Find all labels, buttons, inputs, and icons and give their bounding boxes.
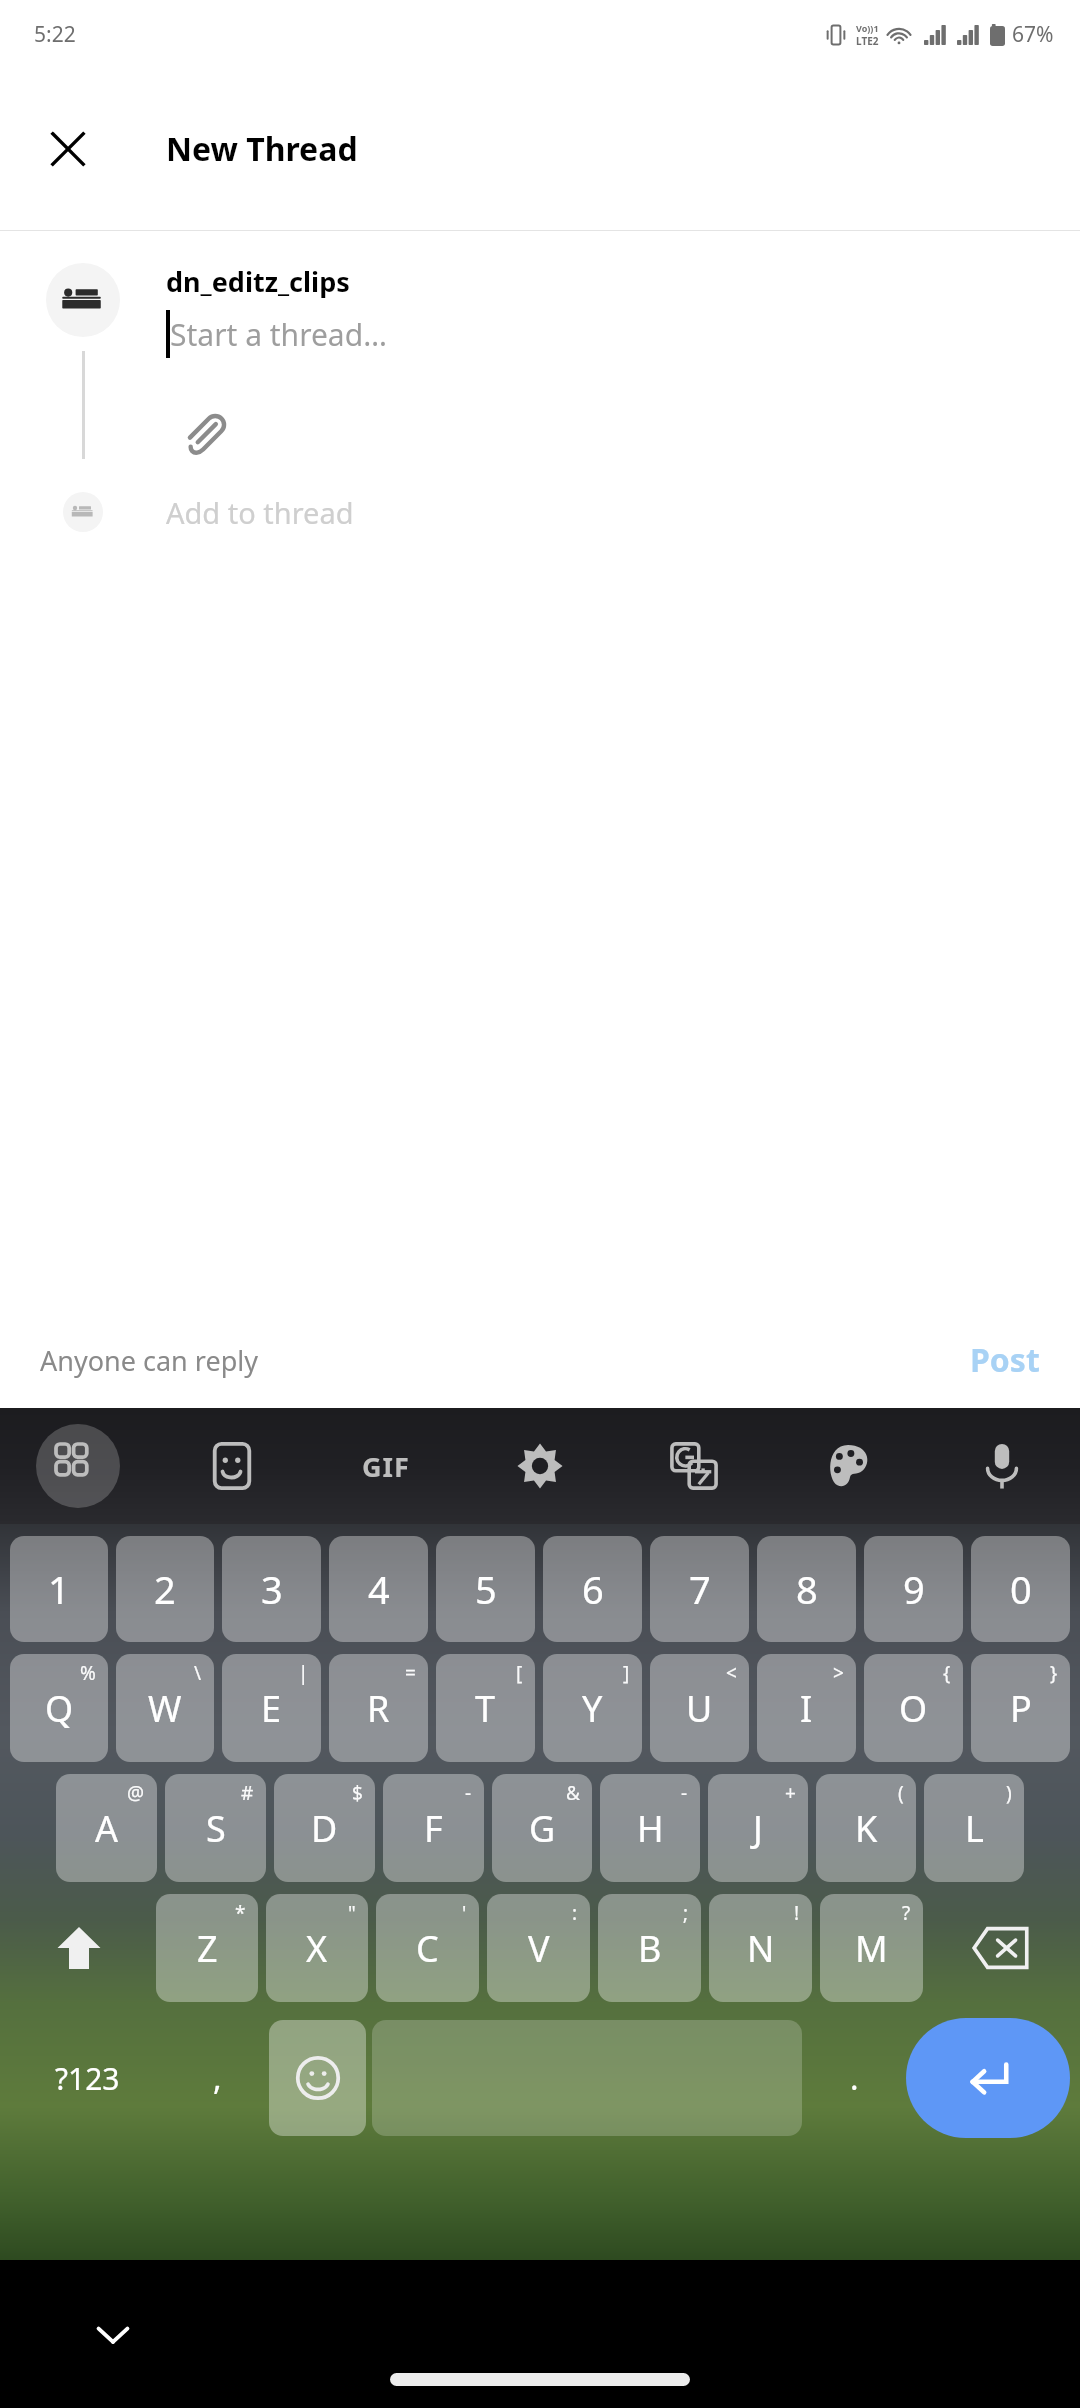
staticText: 6 (582, 1563, 604, 1615)
staticText: K (855, 1804, 878, 1853)
button[interactable]: Hide keyboard (78, 2299, 148, 2369)
button[interactable]: Stickers (190, 1424, 274, 1508)
staticText: 7 (689, 1563, 711, 1615)
button[interactable]: , (171, 2016, 263, 2140)
button[interactable]: Attach file (166, 394, 246, 474)
staticText: ! (794, 1900, 800, 1926)
staticText: 0 (1010, 1563, 1032, 1615)
button[interactable]: Shift (10, 1888, 148, 2008)
staticText: 9 (903, 1563, 925, 1615)
button[interactable]: H (600, 1774, 700, 1882)
staticText: Q (45, 1684, 74, 1733)
staticText: U (686, 1684, 713, 1733)
staticText: - (681, 1780, 688, 1806)
button[interactable]: Translate (652, 1424, 736, 1508)
button[interactable]: Q (10, 1654, 108, 1762)
button[interactable]: 4 (329, 1536, 428, 1642)
staticText: Y (582, 1684, 603, 1733)
button[interactable]: T (436, 1654, 535, 1762)
staticText: dn_editz_clips (166, 263, 350, 300)
button[interactable]: . (808, 2016, 900, 2140)
staticText: % (80, 1660, 96, 1686)
staticText: + (785, 1780, 796, 1806)
button[interactable]: P (971, 1654, 1070, 1762)
button[interactable]: 7 (650, 1536, 749, 1642)
staticText: E (261, 1684, 282, 1733)
button[interactable]: Close (36, 117, 100, 181)
button[interactable]: Enter (906, 2018, 1070, 2138)
staticText: S (206, 1804, 226, 1853)
staticText: $ (352, 1780, 363, 1806)
staticText: M (855, 1924, 888, 1973)
button[interactable]: Voice input (960, 1424, 1044, 1508)
button[interactable]: Keyboard options (36, 1424, 120, 1508)
button[interactable]: Y (543, 1654, 642, 1762)
button[interactable]: Emoji (269, 2020, 366, 2136)
staticText: P (1010, 1684, 1032, 1733)
button[interactable]: Themes (806, 1424, 890, 1508)
button[interactable]: B (598, 1894, 701, 2002)
button[interactable]: E (222, 1654, 321, 1762)
button[interactable]: 0 (971, 1536, 1070, 1642)
staticText: F (424, 1804, 443, 1853)
staticText: A (95, 1804, 119, 1853)
staticText: @ (127, 1780, 145, 1806)
staticText: } (1050, 1660, 1058, 1686)
staticText: V (528, 1924, 550, 1973)
staticText: Post (970, 1338, 1040, 1382)
button[interactable]: ?123 (10, 2016, 165, 2140)
button[interactable]: Anyone can reply (40, 1342, 258, 1379)
button[interactable]: 8 (757, 1536, 856, 1642)
button[interactable]: Settings (498, 1424, 582, 1508)
button[interactable]: D (274, 1774, 375, 1882)
button[interactable]: I (757, 1654, 856, 1762)
button[interactable]: W (116, 1654, 214, 1762)
staticText: 5:22 (34, 20, 76, 49)
button[interactable]: G (492, 1774, 592, 1882)
button[interactable]: C (376, 1894, 479, 2002)
button[interactable]: V (487, 1894, 590, 2002)
button[interactable]: U (650, 1654, 749, 1762)
button[interactable]: X (266, 1894, 368, 2002)
staticText: # (241, 1780, 254, 1806)
button[interactable]: F (383, 1774, 484, 1882)
staticText: 1 (48, 1563, 70, 1615)
staticText: L (965, 1804, 984, 1853)
staticText: 4 (368, 1563, 390, 1615)
staticText: I (800, 1684, 813, 1733)
button[interactable]: 6 (543, 1536, 642, 1642)
button[interactable]: 3 (222, 1536, 321, 1642)
staticText: ?123 (55, 2058, 120, 2099)
staticText: Vo))1 (856, 22, 879, 34)
button[interactable]: A (56, 1774, 157, 1882)
button[interactable]: 9 (864, 1536, 963, 1642)
button[interactable]: 1 (10, 1536, 108, 1642)
staticText: ' (462, 1900, 467, 1926)
button[interactable]: GIF (344, 1424, 428, 1508)
button[interactable]: L (924, 1774, 1024, 1882)
staticText: D (311, 1804, 338, 1853)
staticText: N (747, 1924, 775, 1973)
button[interactable]: N (709, 1894, 812, 2002)
staticText: New Thread (166, 127, 358, 171)
button[interactable]: O (864, 1654, 963, 1762)
button[interactable]: Backspace (931, 1888, 1070, 2008)
button[interactable]: R (329, 1654, 428, 1762)
button[interactable]: 2 (116, 1536, 214, 1642)
staticText: LTE2 (856, 34, 879, 48)
staticText: [ (516, 1660, 523, 1686)
button[interactable]: J (708, 1774, 808, 1882)
button[interactable]: S (165, 1774, 266, 1882)
button[interactable]: Add to thread (0, 492, 1080, 532)
button[interactable]: M (820, 1894, 923, 2002)
button[interactable]: 5 (436, 1536, 535, 1642)
staticText: " (348, 1900, 356, 1926)
staticText: ? (902, 1900, 911, 1926)
staticText: & (566, 1780, 580, 1806)
staticText: Start a thread… (170, 314, 387, 355)
button[interactable]: Post (960, 1332, 1050, 1388)
button[interactable]: K (816, 1774, 916, 1882)
staticText: ] (623, 1660, 630, 1686)
button[interactable]: Z (156, 1894, 258, 2002)
